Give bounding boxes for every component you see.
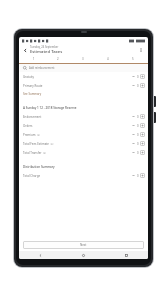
- button[interactable]: Increase: [140, 74, 145, 79]
- staticText: 0: [137, 151, 139, 155]
- button[interactable]: Increase: [140, 132, 145, 137]
- button[interactable]: Decrease: [131, 141, 136, 146]
- button[interactable]: Total Fees Estimate ⓘ: [19, 139, 148, 148]
- staticText: Estimated Taxes: [30, 49, 63, 55]
- button[interactable]: Decrease: [131, 83, 136, 88]
- button[interactable]: Increase: [140, 150, 145, 155]
- staticText: 0: [137, 84, 139, 88]
- button[interactable]: Total Charge: [19, 171, 148, 180]
- staticText: 5: [132, 57, 134, 61]
- button[interactable]: Next: [23, 241, 144, 249]
- button[interactable]: Orders: [19, 121, 148, 130]
- staticText: Total Fees Estimate ⓘ: [23, 142, 131, 146]
- button[interactable]: Increase: [140, 83, 145, 88]
- button[interactable]: Increase: [140, 141, 145, 146]
- staticText: Primary Route: [23, 84, 131, 88]
- staticText: 2: [57, 57, 59, 61]
- button[interactable]: 2: [46, 55, 70, 63]
- staticText: Orders: [23, 124, 131, 128]
- staticText: A Sunday 1 12 - 2018 Storage Reserve: [23, 106, 77, 110]
- staticText: 0: [137, 174, 139, 178]
- button[interactable]: Recents: [105, 251, 148, 259]
- staticText: Tuesday, 24 September: [30, 45, 59, 49]
- button[interactable]: More options: [138, 47, 144, 53]
- staticText: Distribution Summary: [23, 165, 55, 169]
- staticText: 4: [107, 57, 109, 61]
- staticText: 0: [137, 115, 139, 119]
- button[interactable]: Decrease: [131, 114, 136, 119]
- staticText: 0: [137, 124, 139, 128]
- button[interactable]: Decrease: [131, 173, 136, 178]
- staticText: 0: [137, 133, 139, 137]
- button[interactable]: Decrease: [131, 132, 136, 137]
- button[interactable]: Endorsement: [19, 112, 148, 121]
- button[interactable]: Primary Route: [19, 81, 148, 90]
- staticText: 0: [137, 75, 139, 79]
- staticText: Next: [80, 243, 87, 247]
- button[interactable]: Decrease: [131, 123, 136, 128]
- staticText: Gratuity: [23, 75, 131, 79]
- staticText: 3: [82, 57, 84, 61]
- button[interactable]: Back: [23, 48, 28, 53]
- staticText: See Summary: [23, 92, 42, 96]
- button[interactable]: 4: [95, 55, 120, 63]
- staticText: Premium ⓘ: [23, 133, 131, 137]
- staticText: Total Charge: [23, 174, 131, 178]
- button[interactable]: Decrease: [131, 74, 136, 79]
- button[interactable]: See Summary: [19, 90, 148, 98]
- staticText: Endorsement: [23, 115, 131, 119]
- staticText: 1: [33, 57, 35, 61]
- staticText: Add reimbursement: [29, 66, 55, 70]
- button[interactable]: Add reimbursement: [19, 64, 148, 72]
- button[interactable]: Decrease: [131, 150, 136, 155]
- button[interactable]: Total Transfer ⓘ: [19, 148, 148, 157]
- staticText: 0: [137, 142, 139, 146]
- button[interactable]: 1: [22, 55, 46, 63]
- staticText: Total Transfer ⓘ: [23, 151, 131, 155]
- button[interactable]: Increase: [140, 114, 145, 119]
- button[interactable]: Increase: [140, 173, 145, 178]
- button[interactable]: 5: [120, 55, 145, 63]
- button[interactable]: Back: [19, 251, 62, 259]
- button[interactable]: Increase: [140, 123, 145, 128]
- button[interactable]: Premium ⓘ: [19, 130, 148, 139]
- button[interactable]: Gratuity: [19, 72, 148, 81]
- button[interactable]: Home: [62, 251, 105, 259]
- button[interactable]: 3: [70, 55, 95, 63]
